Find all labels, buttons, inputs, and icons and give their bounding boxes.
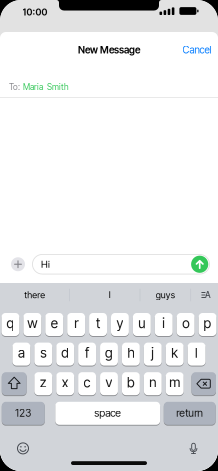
button[interactable]: Delete	[191, 372, 216, 395]
button[interactable]: j	[144, 343, 162, 366]
button[interactable]: k	[166, 343, 184, 366]
staticText: q	[6, 315, 14, 331]
button[interactable]: guys	[140, 283, 190, 307]
staticText: r	[74, 315, 78, 331]
button[interactable]: i	[155, 313, 173, 336]
button[interactable]: Message field	[32, 254, 210, 274]
button[interactable]: s	[34, 343, 52, 366]
button[interactable]: there	[0, 283, 69, 307]
staticText: h	[127, 345, 134, 361]
staticText: Maria Smith	[23, 82, 69, 92]
button[interactable]: m	[166, 372, 184, 395]
staticText: o	[182, 315, 189, 331]
button[interactable]: o	[177, 313, 195, 336]
staticText: j	[151, 345, 154, 361]
button[interactable]: u	[133, 313, 151, 336]
staticText: f	[85, 345, 89, 361]
staticText: i	[162, 315, 165, 331]
button[interactable]: y	[111, 313, 129, 336]
button[interactable]: c	[78, 372, 96, 395]
staticText: e	[51, 315, 58, 331]
staticText: I	[109, 290, 111, 300]
staticText: space	[94, 407, 121, 419]
staticText: return	[176, 407, 203, 419]
staticText: y	[116, 315, 123, 331]
staticText: x	[62, 374, 69, 391]
staticText: d	[61, 345, 69, 361]
button[interactable]: g	[100, 343, 118, 366]
button[interactable]: t	[89, 313, 107, 336]
button[interactable]: n	[144, 372, 162, 395]
staticText: New Message	[78, 44, 140, 56]
button[interactable]: Cancel	[182, 44, 218, 56]
staticText: guys	[156, 290, 175, 300]
staticText: g	[105, 345, 113, 361]
staticText: s	[40, 345, 46, 361]
staticText: Hi	[41, 258, 50, 270]
staticText: c	[84, 374, 91, 391]
button[interactable]: Dictation	[187, 442, 199, 455]
staticText: u	[138, 315, 145, 331]
staticText: b	[127, 374, 135, 391]
staticText: Cancel	[182, 44, 211, 56]
staticText: k	[171, 345, 178, 361]
button[interactable]: a	[12, 343, 30, 366]
button[interactable]: f	[78, 343, 96, 366]
staticText: p	[204, 315, 212, 331]
staticText: A	[205, 290, 211, 300]
button[interactable]: Send	[191, 256, 208, 273]
staticText: t	[96, 315, 100, 331]
button[interactable]: space	[55, 402, 160, 425]
button[interactable]: z	[34, 372, 52, 395]
button[interactable]: x	[56, 372, 74, 395]
button[interactable]: b	[122, 372, 140, 395]
staticText: To:	[9, 82, 20, 92]
staticText: m	[169, 374, 180, 391]
button[interactable]: w	[23, 313, 41, 336]
button[interactable]: 123	[2, 402, 45, 425]
staticText: a	[18, 345, 25, 361]
button[interactable]: l	[188, 343, 206, 366]
button[interactable]: Shift	[2, 372, 27, 395]
button[interactable]: q	[1, 313, 19, 336]
button[interactable]: I	[70, 283, 140, 307]
staticText: 123	[15, 407, 31, 419]
button[interactable]: Emoji	[17, 442, 29, 454]
staticText: v	[105, 374, 112, 391]
staticText: there	[24, 290, 45, 300]
staticText: w	[27, 315, 37, 331]
button[interactable]: v	[100, 372, 118, 395]
button[interactable]: Apps	[11, 257, 25, 271]
staticText: n	[149, 374, 156, 391]
button[interactable]: Predictive text	[191, 283, 218, 307]
button[interactable]: e	[45, 313, 63, 336]
button[interactable]: d	[56, 343, 74, 366]
button[interactable]: To: Maria Smith	[0, 82, 218, 92]
button[interactable]: p	[199, 313, 216, 336]
staticText: z	[40, 374, 47, 391]
staticText: l	[195, 345, 198, 361]
staticText: 10:00	[22, 6, 47, 18]
button[interactable]: return	[164, 402, 216, 425]
button[interactable]: h	[122, 343, 140, 366]
button[interactable]: r	[67, 313, 85, 336]
